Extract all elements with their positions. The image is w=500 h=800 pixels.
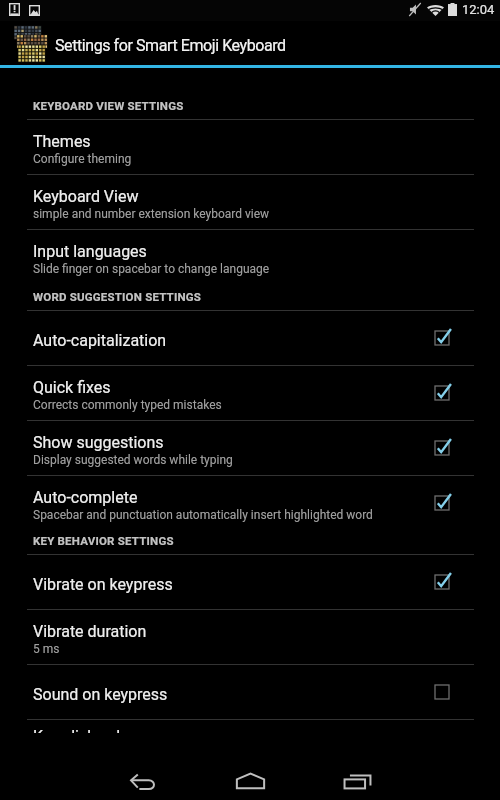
staticText: KEY BEHAVIOR SETTINGS — [33, 534, 174, 547]
button[interactable]: Input languages — [0, 230, 500, 284]
staticText: Display suggested words while typing — [33, 453, 233, 467]
button[interactable]: Show suggestions — [0, 421, 500, 476]
button[interactable]: Themes — [0, 120, 500, 175]
button[interactable]: Auto-capitalization — [0, 311, 500, 366]
button[interactable]: Vibrate duration — [0, 610, 500, 665]
button[interactable]: Quick fixes — [0, 366, 500, 421]
button[interactable]: Key click volume — [0, 720, 500, 733]
button[interactable]: Vibrate on keypress — [0, 555, 500, 610]
button[interactable]: Keyboard View — [0, 175, 500, 230]
button[interactable]: Back — [113, 751, 173, 800]
button[interactable]: Auto-complete — [0, 476, 500, 530]
staticText: Settings for Smart Emoji Keyboard — [55, 36, 286, 55]
staticText: Keyboard View — [33, 187, 139, 206]
staticText: Vibrate duration — [33, 622, 147, 641]
staticText: Input languages — [33, 242, 147, 261]
staticText: simple and number extension keyboard vie… — [33, 207, 270, 221]
staticText: Sound on keypress — [33, 685, 168, 704]
staticText: Show suggestions — [33, 433, 164, 452]
button[interactable]: Settings for Smart Emoji Keyboard — [0, 21, 500, 65]
button[interactable]: Recent apps — [327, 751, 387, 800]
staticText: KEYBOARD VIEW SETTINGS — [33, 99, 184, 112]
staticText: Quick fixes — [33, 378, 111, 397]
staticText: WORD SUGGESTION SETTINGS — [33, 290, 202, 303]
staticText: 12:04 — [462, 2, 495, 17]
staticText: 5 ms — [33, 642, 60, 656]
staticText: Auto-complete — [33, 488, 138, 507]
button[interactable]: Sound on keypress — [0, 665, 500, 720]
staticText: Key click volume — [33, 727, 152, 733]
button[interactable]: Home — [220, 751, 280, 800]
staticText: Slide finger on spacebar to change langu… — [33, 262, 270, 276]
staticText: Spacebar and punctuation automatically i… — [33, 508, 373, 522]
staticText: Vibrate on keypress — [33, 575, 173, 594]
staticText: Themes — [33, 132, 91, 151]
staticText: Corrects commonly typed mistakes — [33, 398, 222, 412]
staticText: Auto-capitalization — [33, 331, 167, 350]
staticText: Configure theming — [33, 152, 132, 166]
